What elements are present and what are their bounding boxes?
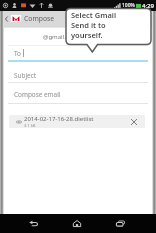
button[interactable]: Navigate up (2, 11, 10, 26)
staticText: Subject (14, 71, 37, 80)
button[interactable]: Subject (0, 68, 156, 82)
button[interactable]: Recent apps (110, 214, 130, 233)
staticText: Compose email (14, 90, 61, 99)
staticText: Select Gmail Send it to yourself. (71, 10, 117, 40)
button[interactable]: More options (144, 11, 154, 26)
staticText: 4:29 (142, 2, 154, 10)
button[interactable]: To (0, 46, 156, 60)
button[interactable]: Compose email (0, 87, 156, 101)
staticText: 2014-02-17-16-28.dietlist (24, 115, 94, 123)
staticText: @gmail.com (43, 33, 78, 41)
button[interactable]: Home (67, 214, 87, 233)
button[interactable]: Remove attachment (127, 115, 141, 128)
staticText: To (14, 49, 21, 58)
staticText: 3.1 kB (24, 123, 36, 128)
staticText: 100% (122, 2, 135, 9)
staticText: Compose (24, 14, 55, 23)
button[interactable]: 2014-02-17-16-28.dietlist (9, 115, 145, 128)
button[interactable]: Gmail (10, 11, 21, 26)
button[interactable]: Back (23, 214, 43, 233)
